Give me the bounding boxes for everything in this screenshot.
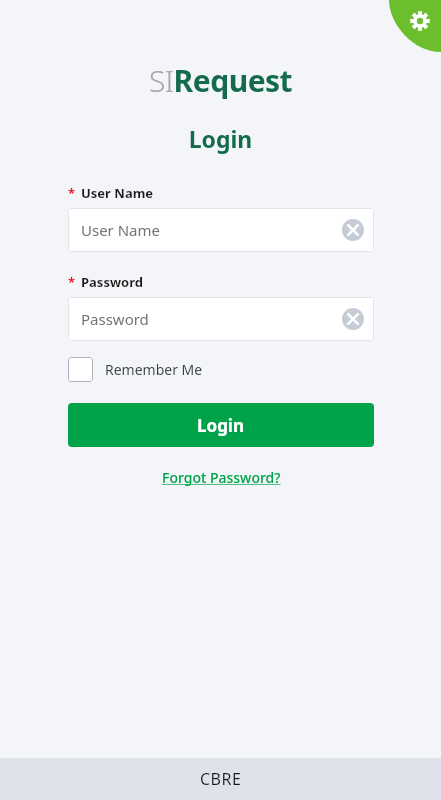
staticText: User Name: [81, 184, 154, 202]
staticText: CBRE: [200, 768, 242, 790]
staticText: Remember Me: [105, 360, 203, 379]
button[interactable]: Remember Me: [68, 357, 203, 382]
button[interactable]: Clear: [342, 219, 364, 241]
staticText: *: [68, 273, 76, 291]
button[interactable]: Clear: [342, 308, 364, 330]
staticText: User Name: [81, 220, 161, 240]
button[interactable]: Login: [68, 403, 374, 447]
staticText: Password: [81, 309, 149, 329]
button[interactable]: User Name: [68, 208, 374, 252]
staticText: *: [68, 184, 76, 202]
staticText: Login: [0, 123, 441, 154]
button[interactable]: Settings: [389, 0, 441, 52]
staticText: Login: [197, 414, 245, 437]
button[interactable]: Password: [68, 297, 374, 341]
staticText: Password: [81, 273, 143, 291]
staticText: SIRequest: [0, 60, 441, 101]
button[interactable]: Forgot Password?: [162, 468, 281, 487]
